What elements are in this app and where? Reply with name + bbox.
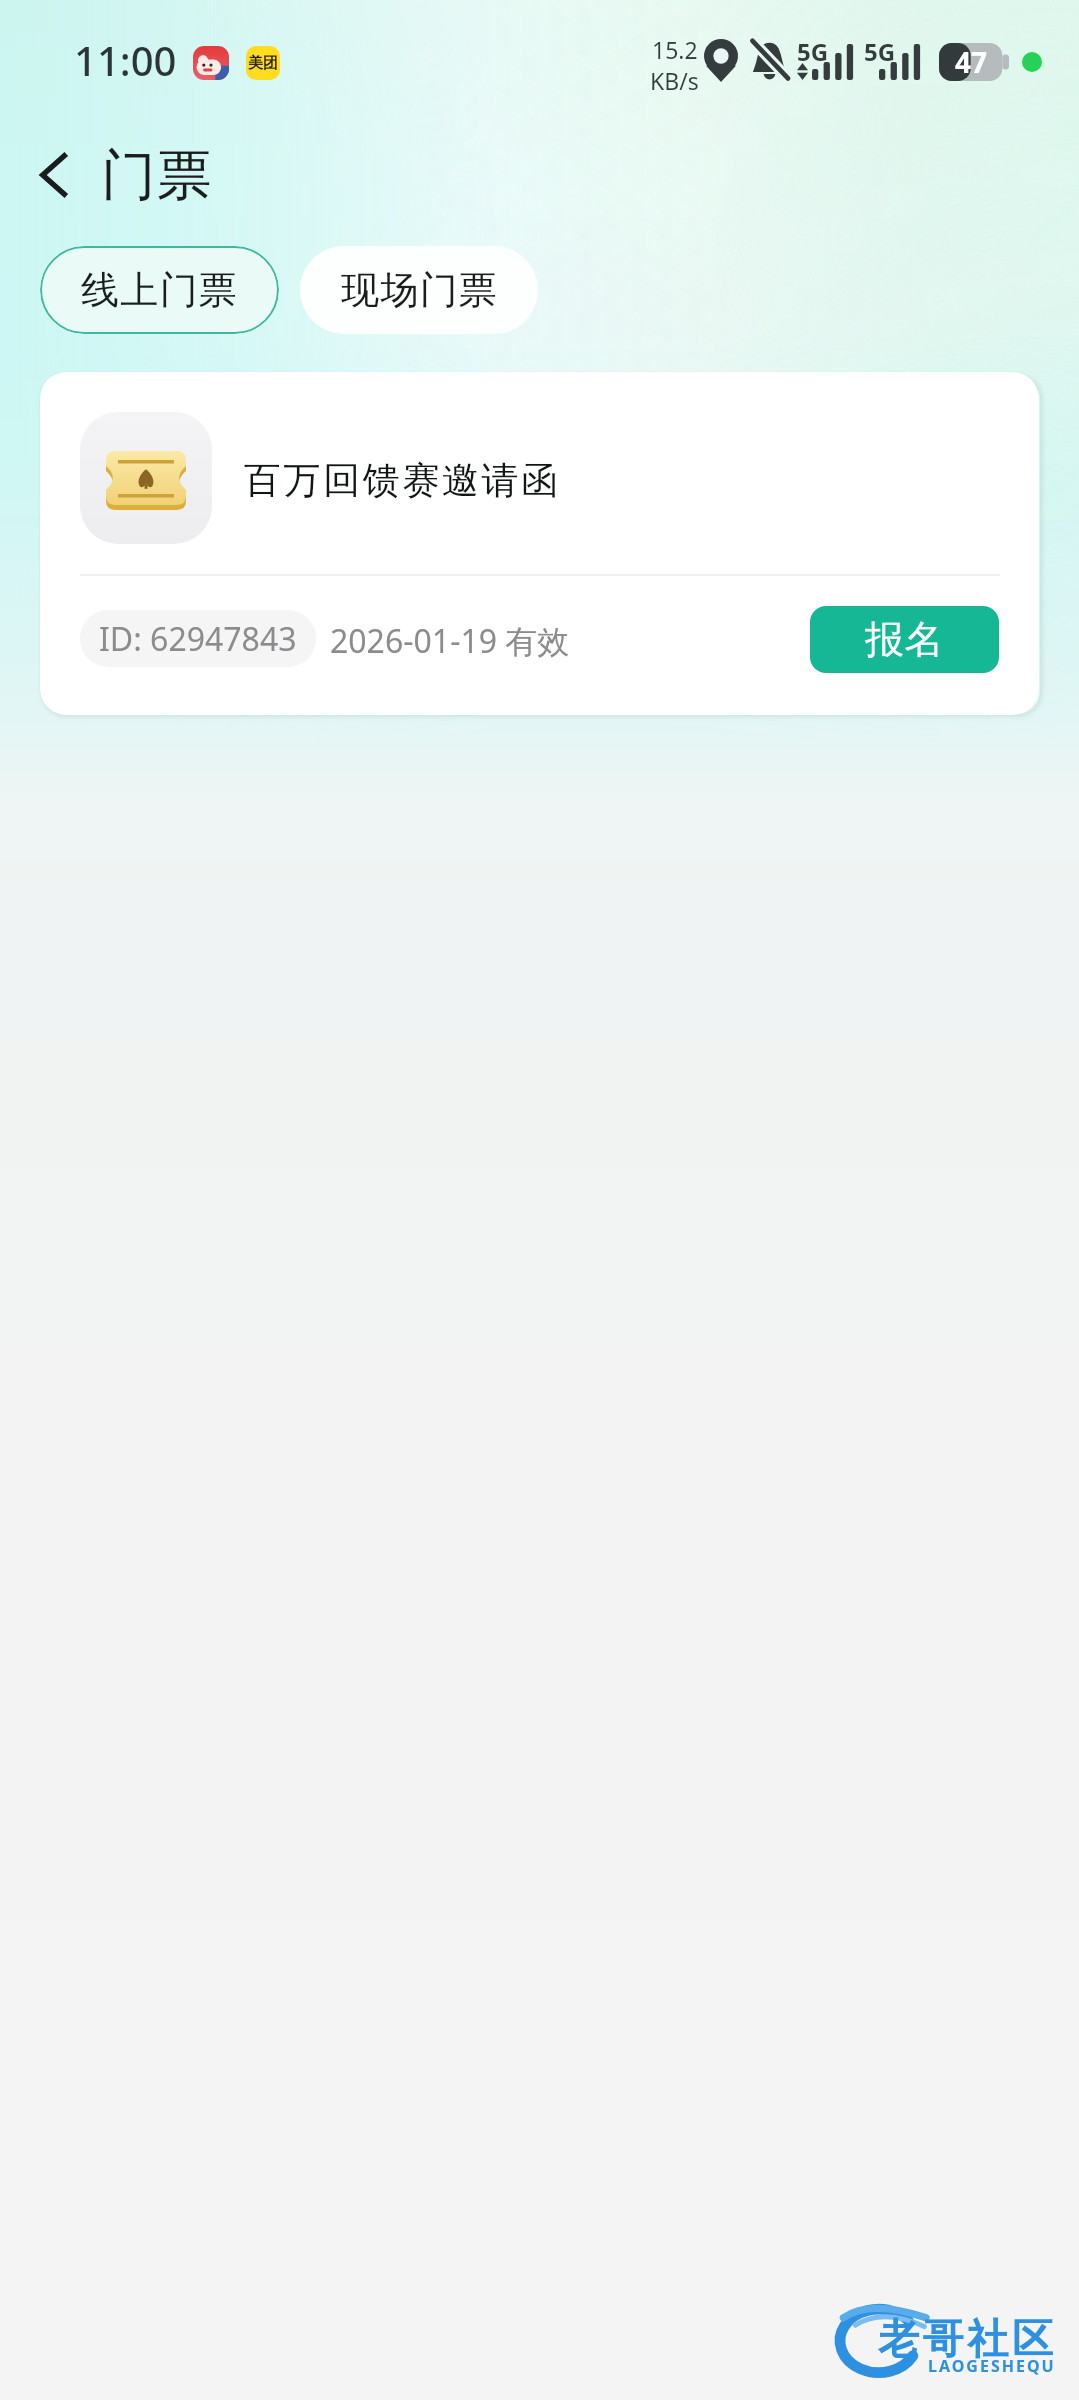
- staticText: 线上门票: [81, 266, 238, 314]
- button[interactable]: Back: [11, 127, 95, 223]
- staticText: 5G: [797, 35, 829, 68]
- staticText: 美团: [248, 54, 278, 73]
- button[interactable]: 百万回馈赛邀请函: [40, 372, 1039, 715]
- staticText: 11:00: [74, 33, 177, 87]
- button[interactable]: 现场门票: [300, 246, 538, 334]
- staticText: 门票: [101, 141, 212, 210]
- staticText: 5G: [864, 35, 896, 68]
- button[interactable]: 线上门票: [40, 246, 279, 334]
- staticText: 15.2: [652, 34, 698, 65]
- staticText: 老哥社区: [878, 2314, 1057, 2366]
- staticText: 47: [955, 43, 988, 81]
- staticText: 现场门票: [341, 266, 498, 314]
- staticText: ID: 62947843: [99, 617, 297, 661]
- staticText: 百万回馈赛邀请函: [244, 457, 561, 504]
- staticText: LAOGESHEQU: [928, 2355, 1056, 2377]
- button[interactable]: 报名: [810, 606, 999, 673]
- staticText: 2026-01-19 有效: [330, 619, 570, 663]
- staticText: KB/s: [650, 65, 699, 96]
- staticText: 报名: [865, 615, 945, 664]
